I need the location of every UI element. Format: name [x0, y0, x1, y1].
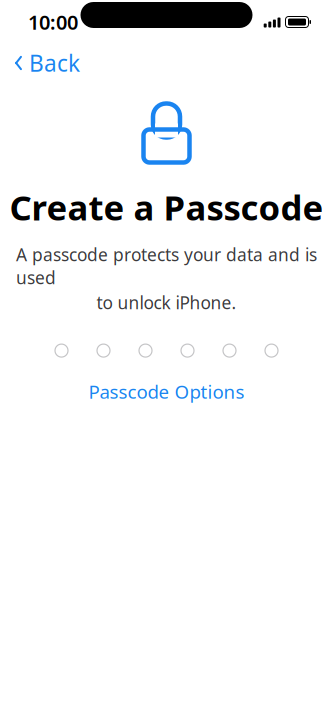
staticText: 10:00: [28, 9, 78, 35]
staticText: Passcode Options: [88, 379, 244, 404]
staticText: Back: [29, 48, 80, 78]
button[interactable]: Passcode Options: [74, 371, 258, 412]
staticText: to unlock iPhone.: [96, 291, 236, 314]
staticText: Create a Passcode: [9, 184, 323, 230]
staticText: A passcode protects your data and is use…: [16, 243, 317, 289]
button[interactable]: Back: [3, 42, 90, 84]
